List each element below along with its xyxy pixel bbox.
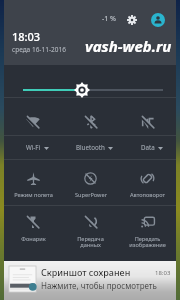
button[interactable]: SuperPower [62, 159, 119, 205]
staticText: -1 % [102, 14, 117, 24]
staticText: Передать изображение [129, 235, 166, 249]
button[interactable]: Передача данных [62, 205, 119, 261]
staticText: 18:03 [155, 269, 171, 277]
button[interactable]: Bluetooth [62, 97, 119, 135]
staticText: среда 16-11-2016 [12, 45, 66, 54]
staticText: Data [141, 143, 155, 151]
staticText: Автоповорот [130, 191, 165, 199]
button[interactable]: Автоповорот [119, 159, 176, 205]
button[interactable]: User profile [150, 12, 165, 27]
button[interactable]: Bluetooth [62, 135, 119, 159]
staticText: Скриншот сохранен [41, 266, 131, 278]
button[interactable]: Wi-Fi [4, 97, 62, 135]
button[interactable]: Фонарик [4, 205, 62, 261]
button[interactable]: Settings [125, 13, 138, 26]
button[interactable]: Режим полета [4, 159, 62, 205]
button[interactable]: Mobile data [119, 97, 176, 135]
staticText: SuperPower [75, 191, 107, 199]
staticText: 18:03 [12, 29, 41, 44]
button[interactable]: Скриншот сохранен [4, 261, 176, 300]
staticText: Bluetooth [76, 143, 105, 151]
staticText: Передача данных [77, 235, 104, 249]
button[interactable]: Передать изображение [119, 205, 176, 261]
staticText: vash-web.ru [85, 36, 172, 56]
button[interactable]: Data [119, 135, 176, 159]
staticText: Wi-Fi [26, 143, 41, 151]
staticText: Нажмите, чтобы просмотреть [41, 280, 157, 291]
staticText: Режим полета [14, 191, 53, 199]
button[interactable]: Wi-Fi [4, 135, 62, 159]
staticText: Фонарик [21, 235, 46, 243]
